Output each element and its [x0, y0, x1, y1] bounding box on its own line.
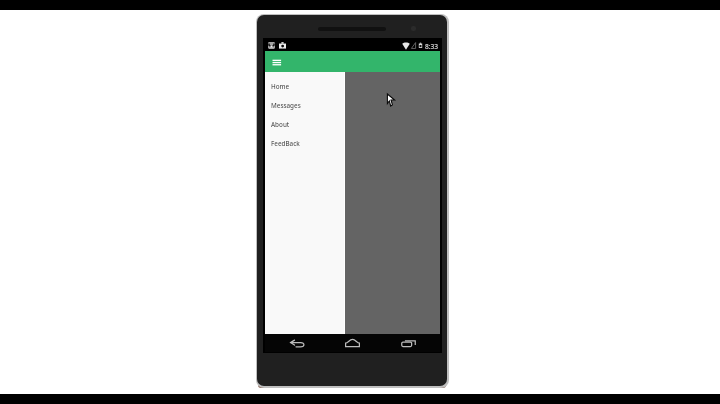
staticText: Home — [271, 82, 290, 91]
button[interactable]: About — [265, 115, 345, 134]
button[interactable]: Home — [265, 77, 345, 96]
staticText: Messages — [271, 101, 301, 110]
button[interactable]: Open navigation drawer — [268, 51, 287, 72]
button[interactable]: Recent apps — [397, 334, 419, 352]
staticText: About — [271, 120, 290, 129]
staticText: FeedBack — [271, 139, 300, 148]
button[interactable]: Back — [286, 334, 308, 352]
staticText: 8:33 — [425, 42, 439, 51]
button[interactable]: Messages — [265, 96, 345, 115]
button[interactable]: Home — [341, 334, 363, 352]
button[interactable]: FeedBack — [265, 134, 345, 153]
